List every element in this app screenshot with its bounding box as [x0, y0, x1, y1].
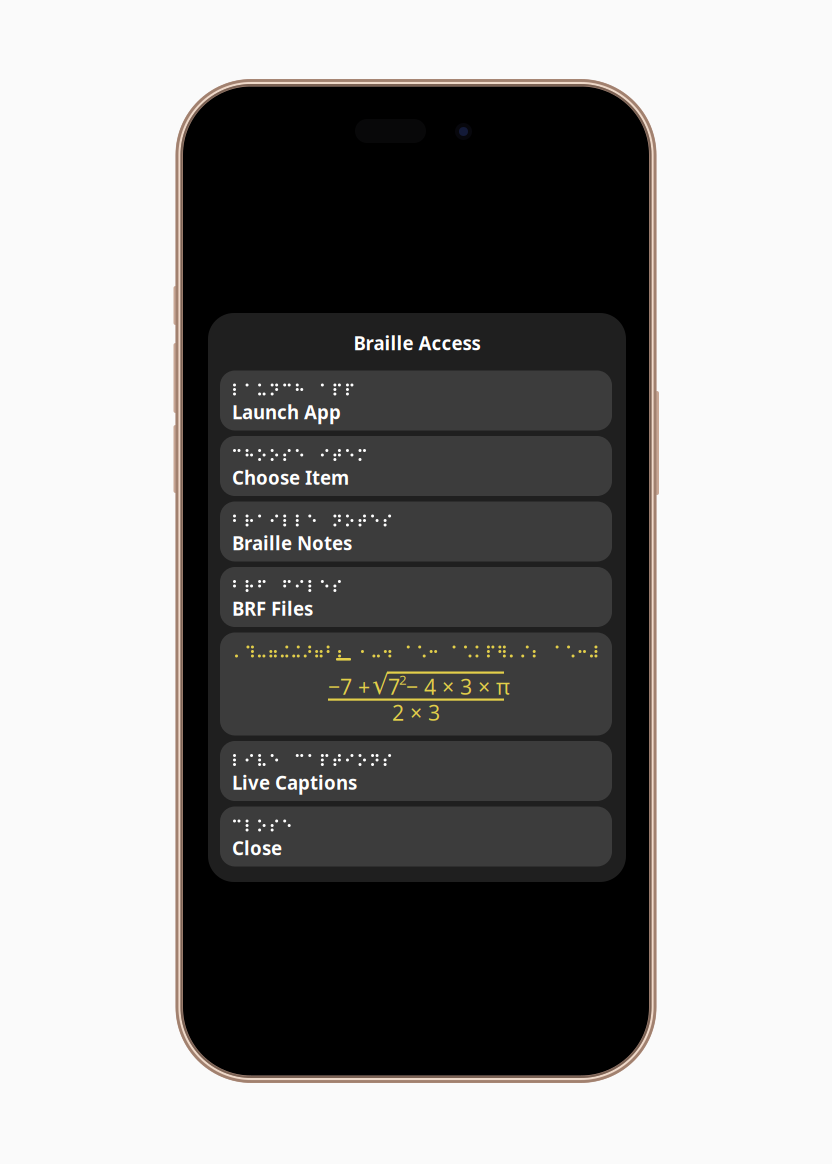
- button[interactable]: Braille Notes: [220, 501, 612, 561]
- staticText: √: [372, 669, 389, 700]
- staticText: 2: [399, 671, 407, 688]
- button[interactable]: Choose Item: [220, 436, 612, 496]
- button[interactable]: −7 +: [220, 632, 612, 735]
- button[interactable]: Live Captions: [220, 741, 612, 801]
- staticText: Choose Item: [232, 465, 349, 490]
- staticText: Braille Notes: [232, 530, 352, 555]
- staticText: 7: [388, 672, 400, 701]
- staticText: BRF Files: [232, 596, 313, 621]
- staticText: 2 × 3: [392, 698, 440, 727]
- staticText: Braille Access: [353, 331, 480, 355]
- staticText: −7 +: [328, 672, 376, 701]
- staticText: Launch App: [232, 399, 341, 424]
- button[interactable]: BRF Files: [220, 567, 612, 627]
- staticText: − 4 × 3 × π: [406, 672, 510, 701]
- staticText: Close: [232, 835, 282, 860]
- staticText: Live Captions: [232, 770, 357, 795]
- button[interactable]: Launch App: [220, 370, 612, 430]
- button[interactable]: Close: [220, 806, 612, 866]
